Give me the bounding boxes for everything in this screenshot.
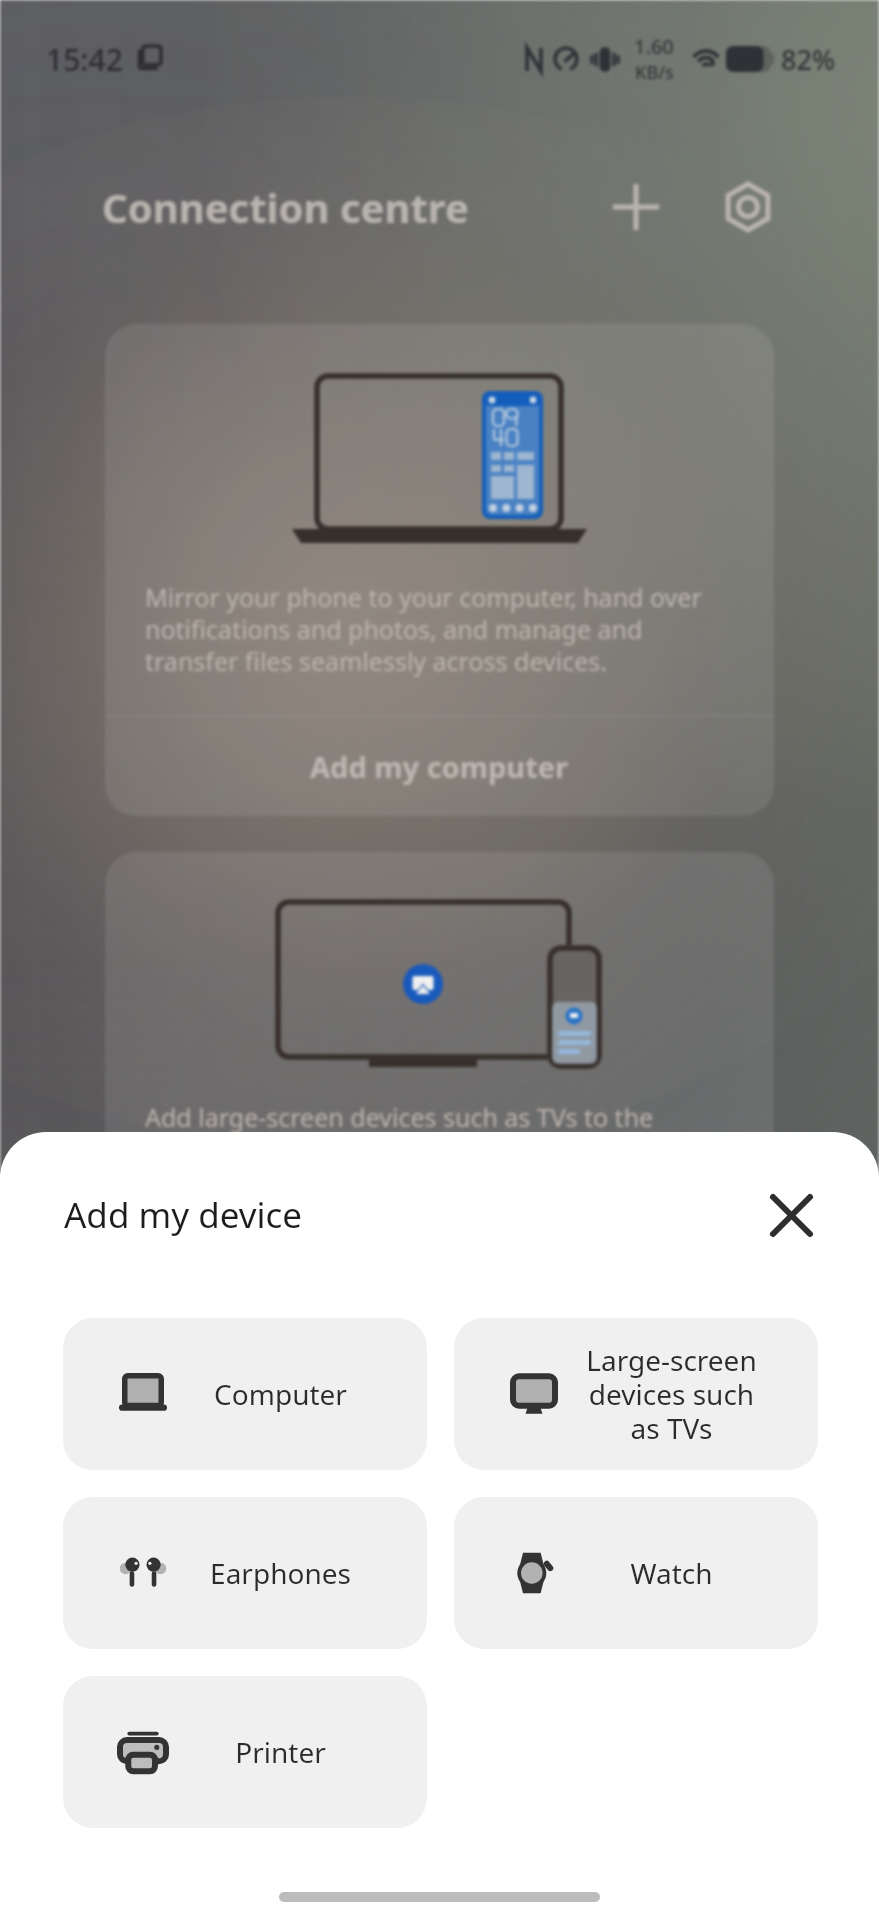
staticText: Earphones [210, 1554, 351, 1592]
staticText: Add my device [64, 1191, 303, 1239]
staticText: Mirror your phone to your computer, hand… [145, 580, 702, 678]
staticText: Add large-screen devices such as TVs to … [145, 1100, 654, 1134]
staticText: KB/s [635, 60, 674, 85]
button[interactable]: Earphones [63, 1497, 427, 1649]
button[interactable]: Large-screen devices such as TVs [454, 1318, 818, 1470]
staticText: 15:42 [46, 39, 123, 80]
staticText: Computer [214, 1375, 347, 1413]
button[interactable]: Settings [715, 174, 781, 240]
button[interactable]: Add my computer [105, 716, 774, 816]
staticText: Connection centre [102, 180, 469, 234]
staticText: Watch [630, 1554, 713, 1592]
button[interactable]: Computer [63, 1318, 427, 1470]
staticText: Printer [235, 1733, 326, 1771]
button[interactable]: Watch [454, 1497, 818, 1649]
staticText: Large-screen devices such as TVs [586, 1341, 757, 1447]
staticText: 1.60 [634, 33, 674, 60]
button[interactable]: Add [603, 174, 669, 240]
staticText: 82% [781, 41, 835, 78]
staticText: Add my computer [310, 747, 569, 786]
button[interactable]: Printer [63, 1676, 427, 1828]
button[interactable]: Close [757, 1181, 825, 1249]
